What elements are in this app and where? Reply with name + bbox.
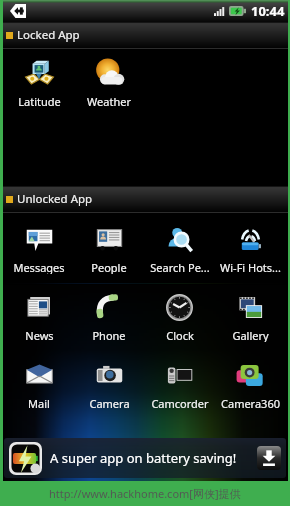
staticText: Clock: [166, 328, 194, 342]
staticText: Search Pe...: [150, 260, 210, 274]
button[interactable]: Phone: [74, 293, 144, 342]
button[interactable]: Mail: [4, 361, 74, 410]
staticText: People: [91, 260, 127, 274]
staticText: Locked App: [17, 27, 80, 43]
staticText: News: [25, 328, 54, 342]
staticText: Wi-Fi Hots...: [220, 260, 281, 274]
button[interactable]: Locked App: [0, 22, 290, 48]
staticText: Camcorder: [151, 396, 209, 410]
button[interactable]: Gallery: [215, 293, 286, 342]
button[interactable]: Search Pe...: [144, 225, 215, 274]
button[interactable]: Camera: [74, 361, 144, 410]
button[interactable]: People: [74, 225, 144, 274]
button[interactable]: Camera360: [215, 361, 286, 410]
button[interactable]: Wi-Fi Hots...: [215, 225, 286, 274]
staticText: Mail: [28, 396, 50, 410]
staticText: Unlocked App: [17, 191, 93, 207]
staticText: Latitude: [18, 94, 61, 108]
staticText: Camera360: [221, 396, 280, 410]
button[interactable]: Clock: [144, 293, 215, 342]
staticText: Weather: [87, 94, 131, 108]
button[interactable]: A super app on battery saving!: [4, 438, 286, 478]
button[interactable]: News: [4, 293, 74, 342]
staticText: Messages: [13, 260, 65, 274]
staticText: Camera: [89, 396, 130, 410]
button[interactable]: Download: [257, 446, 281, 470]
button[interactable]: Back: [10, 4, 26, 18]
staticText: 10:44: [251, 2, 285, 20]
button[interactable]: Latitude: [4, 59, 74, 108]
button[interactable]: Unlocked App: [0, 186, 290, 212]
staticText: A super app on battery saving!: [50, 449, 237, 467]
staticText: http://www.hackhome.com[网侠]提供: [49, 486, 241, 501]
button[interactable]: Weather: [74, 59, 144, 108]
button[interactable]: Camcorder: [144, 361, 215, 410]
staticText: Gallery: [232, 328, 269, 342]
staticText: Phone: [92, 328, 126, 342]
button[interactable]: Messages: [4, 225, 74, 274]
